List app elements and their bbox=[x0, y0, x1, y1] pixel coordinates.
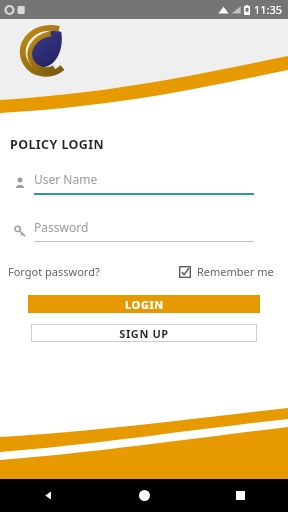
staticText: Remember me bbox=[197, 264, 274, 279]
button[interactable]: LOGIN bbox=[28, 295, 260, 313]
button[interactable]: Remember me bbox=[177, 262, 276, 281]
button[interactable]: SIGN UP bbox=[31, 324, 257, 342]
staticText: 11:35 bbox=[254, 2, 283, 17]
staticText: POLICY LOGIN bbox=[10, 136, 105, 153]
button[interactable]: Password bbox=[14, 219, 254, 242]
button[interactable]: User Name bbox=[14, 171, 254, 195]
staticText: Password bbox=[34, 219, 89, 235]
staticText: User Name bbox=[34, 171, 98, 187]
button[interactable]: Home bbox=[96, 479, 192, 512]
button[interactable]: Forgot password? bbox=[6, 262, 102, 281]
button[interactable]: Back bbox=[0, 479, 96, 512]
button[interactable]: Recent apps bbox=[192, 479, 288, 512]
staticText: LOGIN bbox=[125, 297, 164, 312]
staticText: SIGN UP bbox=[119, 326, 169, 341]
